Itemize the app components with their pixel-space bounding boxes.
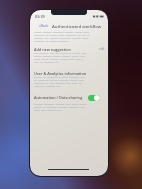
button[interactable]: Back [39,23,49,28]
button[interactable]: Add new suggestion [34,46,105,52]
staticText: Automation / Data sharing [34,95,83,100]
button[interactable]: Automation data sharing toggle [88,95,100,101]
staticText: User & Analytics information [34,71,87,76]
button[interactable]: User & Analytics information [34,70,105,76]
staticText: edit [99,47,105,51]
staticText: Back [41,24,49,28]
staticText: Authenticated workflow [52,23,102,29]
staticText: 03:39 [35,14,45,19]
staticText: Add new suggestion [34,47,71,52]
